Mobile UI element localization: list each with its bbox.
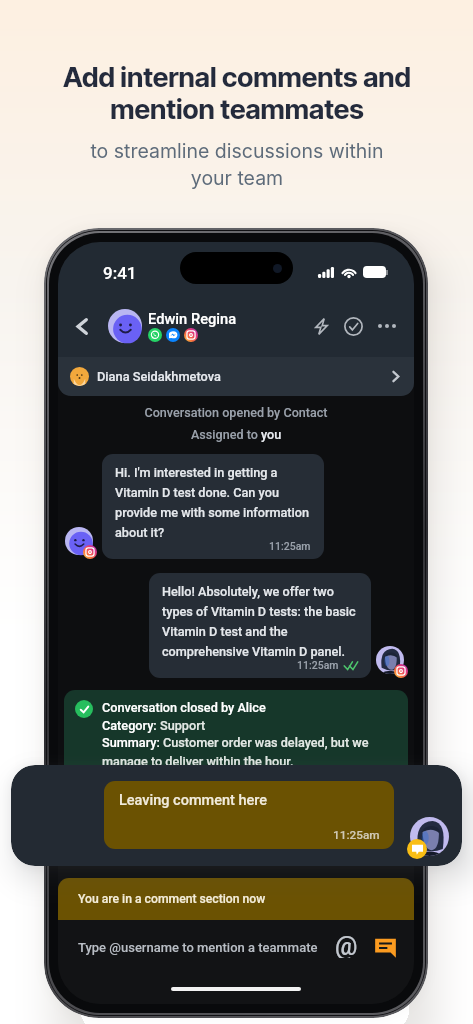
staticText: Edwin Regina [148, 310, 237, 327]
staticText: Leaving comment here [119, 792, 268, 809]
staticText: Assigned to [191, 427, 261, 442]
button[interactable]: You are in a comment section now [58, 878, 414, 920]
staticText: Conversation opened by Contact [58, 405, 414, 420]
staticText: Summary: Customer order was delayed, but… [102, 735, 398, 769]
button[interactable]: Quick actions [308, 313, 334, 339]
button[interactable]: Close conversation [340, 313, 366, 339]
button[interactable]: Diana Seidakhmetova [58, 357, 414, 396]
staticText: 11:25am [269, 540, 311, 552]
staticText: Add internal comments and mention teamma… [63, 60, 411, 126]
staticText: Type @username to mention a teammate [78, 940, 318, 955]
staticText: Conversation closed by Alice [102, 700, 266, 715]
staticText: to streamline discussions within your te… [90, 139, 384, 189]
staticText: 9:41 [103, 263, 137, 283]
staticText: Category: [102, 718, 160, 733]
staticText: Diana Seidakhmetova [97, 369, 221, 384]
staticText: Hi. I'm interested in getting a Vitamin … [115, 465, 311, 540]
staticText: you [261, 427, 282, 442]
button[interactable]: More options [375, 321, 399, 331]
staticText: Support [160, 718, 206, 733]
button[interactable]: Mention [333, 934, 359, 960]
staticText: Hello! Absolutely, we offer two types of… [162, 584, 358, 659]
staticText: You are in a comment section now [78, 892, 266, 906]
button[interactable]: Back [69, 313, 95, 339]
staticText: @ [335, 932, 358, 958]
button[interactable]: Comment [372, 934, 398, 960]
staticText: 11:25am [333, 828, 380, 842]
staticText: 11:25am [297, 659, 339, 671]
